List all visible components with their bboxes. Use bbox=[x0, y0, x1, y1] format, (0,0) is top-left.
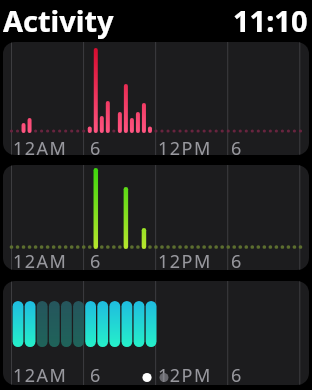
staticText: 6 bbox=[231, 363, 243, 385]
staticText: 6 bbox=[231, 136, 243, 155]
staticText: 12PM bbox=[158, 136, 212, 155]
staticText: 12AM bbox=[13, 363, 68, 385]
button[interactable]: 12AM bbox=[3, 42, 309, 155]
staticText: 12PM bbox=[158, 363, 212, 385]
staticText: 12PM bbox=[158, 249, 212, 270]
staticText: 6 bbox=[90, 363, 102, 385]
button[interactable]: 12AM bbox=[3, 165, 309, 270]
staticText: Activity bbox=[3, 1, 114, 40]
staticText: 12AM bbox=[13, 249, 68, 270]
staticText: 6 bbox=[90, 136, 102, 155]
staticText: 12AM bbox=[13, 136, 68, 155]
staticText: 6 bbox=[90, 249, 102, 270]
button[interactable]: 12AM bbox=[3, 281, 309, 385]
staticText: 11:10 bbox=[233, 1, 308, 40]
staticText: 6 bbox=[231, 249, 243, 270]
